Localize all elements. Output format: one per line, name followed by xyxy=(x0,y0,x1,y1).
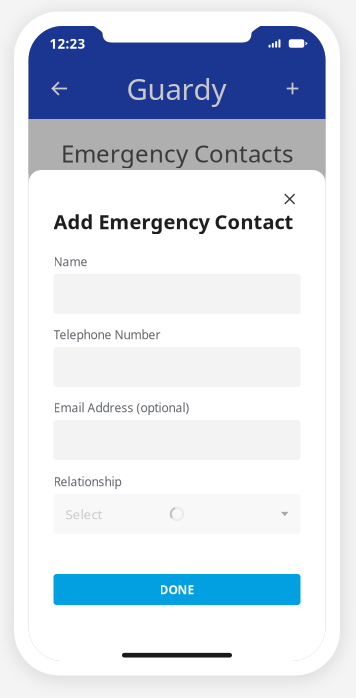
staticText: Emergency Contacts xyxy=(61,137,293,169)
staticText: Name xyxy=(53,253,87,269)
button[interactable]: Close xyxy=(271,187,300,211)
staticText: Email Address (optional) xyxy=(53,399,189,415)
staticText: Relationship xyxy=(53,473,121,489)
staticText: Add Emergency Contact xyxy=(53,208,293,235)
staticText: 12:23 xyxy=(49,35,85,52)
staticText: Guardy xyxy=(126,69,226,108)
button[interactable]: Add contact xyxy=(271,66,313,110)
staticText: Telephone Number xyxy=(53,326,160,342)
staticText: Select xyxy=(65,505,102,523)
staticText: DONE xyxy=(159,581,194,597)
button[interactable]: DONE xyxy=(53,574,300,605)
button[interactable]: Relationship xyxy=(53,494,300,534)
button[interactable]: Back xyxy=(37,66,81,110)
